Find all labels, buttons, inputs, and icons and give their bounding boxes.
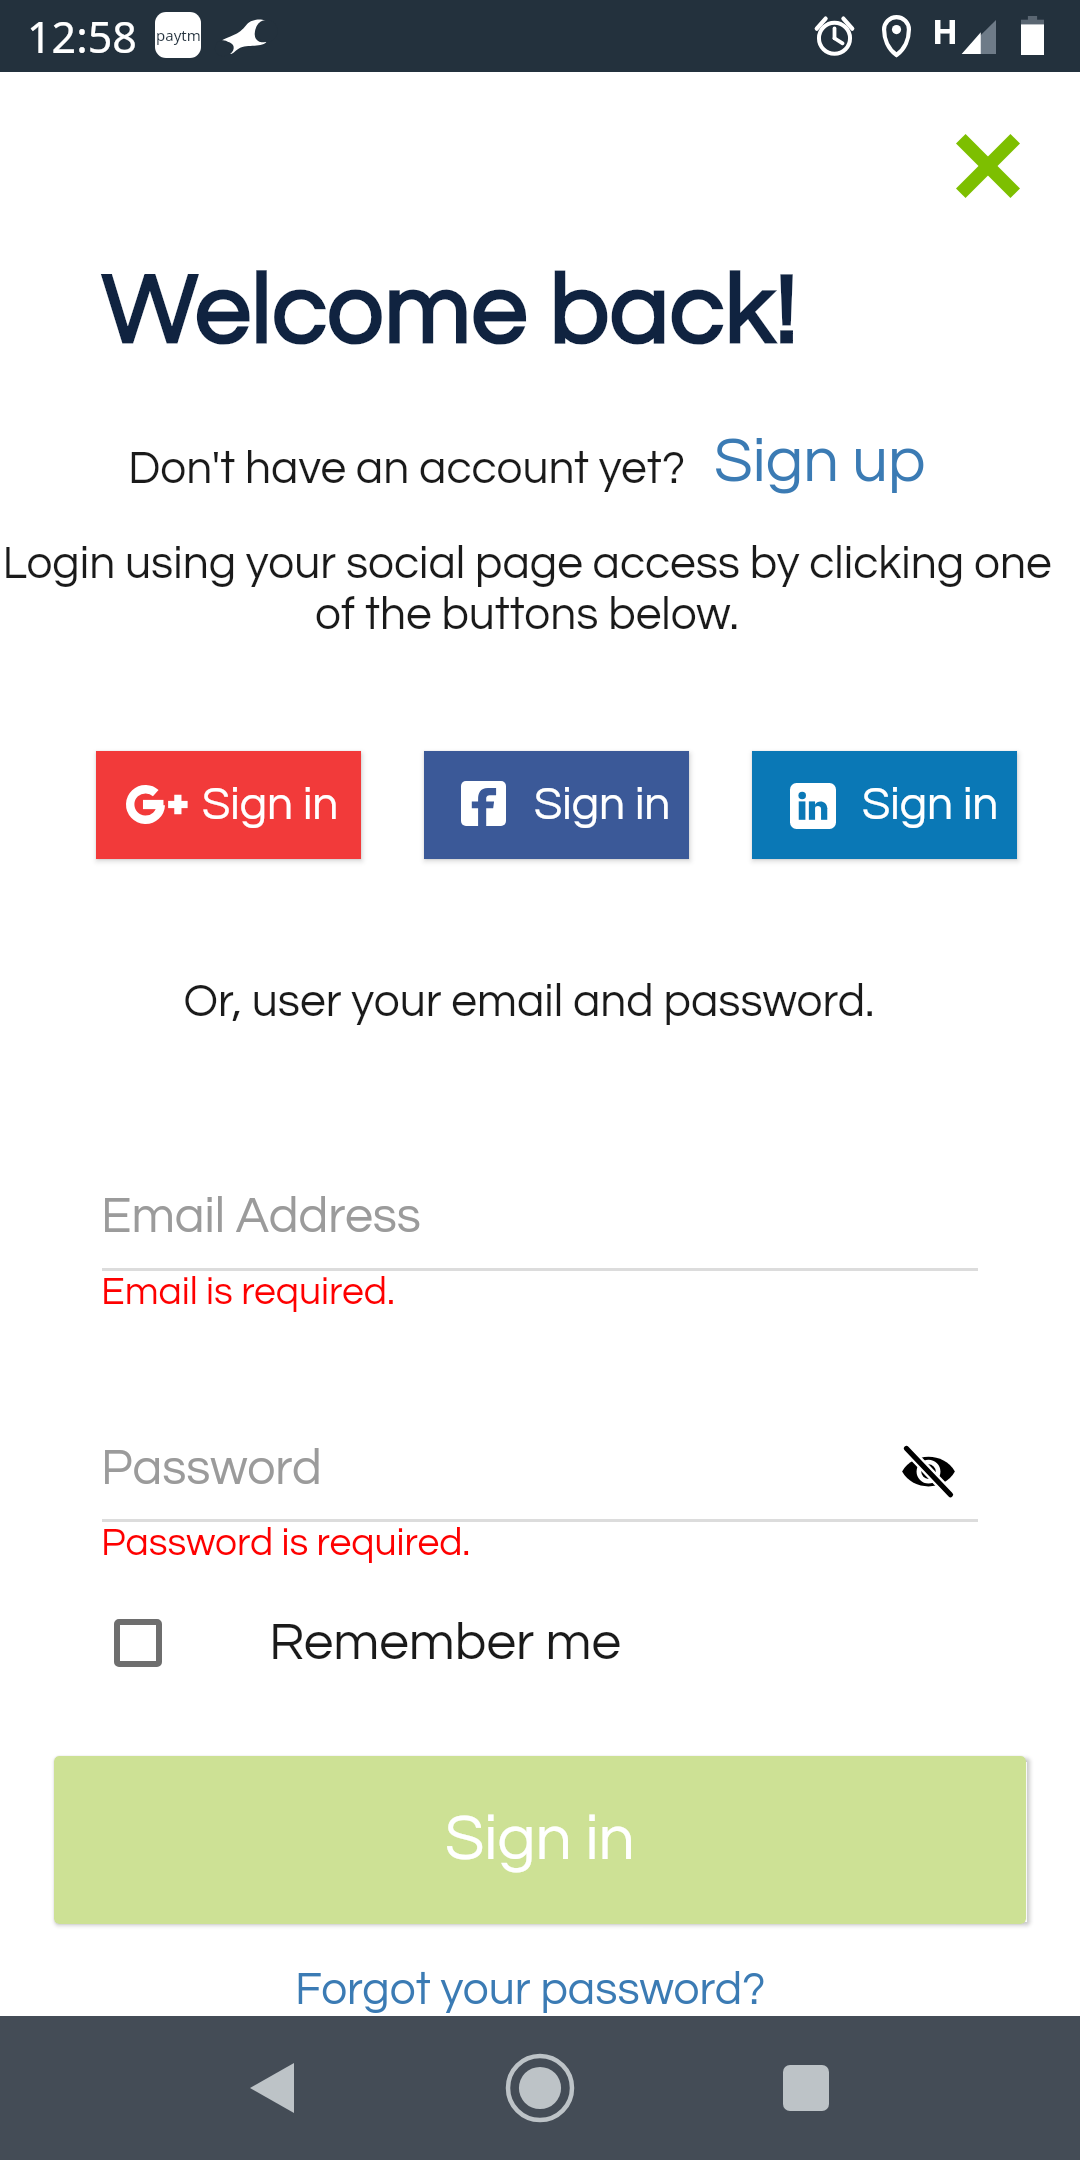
staticText: Sign in	[202, 781, 339, 828]
staticText: Sign up	[714, 429, 926, 494]
button[interactable]: Forgot your password?	[285, 1958, 775, 2020]
staticText: Password	[101, 1443, 322, 1495]
staticText: Email Address	[101, 1191, 421, 1243]
button[interactable]: Sign in	[96, 751, 361, 859]
staticText: Sign in	[445, 1807, 635, 1873]
staticText: Sign in	[862, 781, 999, 828]
button[interactable]: Close	[936, 114, 1040, 218]
staticText: Email is required.	[101, 1272, 395, 1312]
button[interactable]: Sign up	[714, 429, 944, 509]
staticText: Remember me	[269, 1616, 622, 1671]
button[interactable]: Show password	[896, 1438, 960, 1502]
button[interactable]: Sign in	[424, 751, 689, 859]
staticText: Login using your social page access by c…	[0, 540, 1067, 638]
staticText: Don't have an account yet?	[128, 445, 686, 492]
staticText: Or, user your email and password.	[0, 978, 1069, 1025]
button[interactable]: Sign in	[752, 751, 1017, 859]
staticText: Password is required.	[101, 1523, 471, 1563]
button[interactable]: Recents	[758, 2040, 854, 2136]
staticText: Welcome back!	[102, 260, 799, 363]
staticText: paytm	[156, 25, 201, 45]
staticText: 12:58	[27, 7, 137, 66]
button[interactable]: Sign in	[54, 1756, 1026, 1924]
button[interactable]: Home	[492, 2040, 588, 2136]
button[interactable]: Back	[224, 2040, 320, 2136]
button[interactable]: Remember me	[114, 1608, 624, 1678]
staticText: H	[932, 8, 959, 54]
staticText: Sign in	[534, 781, 671, 828]
staticText: Forgot your password?	[295, 1966, 766, 2013]
